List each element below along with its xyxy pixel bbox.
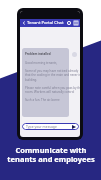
button[interactable]: Back (20, 19, 27, 27)
staticText: that the cooling in the main and never i… (25, 73, 80, 77)
other: Send (72, 125, 76, 129)
button[interactable] (22, 48, 69, 117)
staticText: Tenant Portal Chat (27, 20, 64, 26)
button[interactable]: Type your message (22, 123, 79, 130)
staticText: Please note careful when you pass by thi… (25, 86, 80, 90)
button[interactable]: Menu (72, 19, 80, 27)
staticText: Communicate with tenants and employees (7, 145, 95, 164)
staticText: building. (25, 78, 38, 82)
button[interactable]: Notifications (65, 19, 72, 27)
staticText: Good morning tenants, (25, 61, 58, 65)
staticText: Such a fun. The air-borne (25, 98, 60, 102)
staticText: Problem installed (25, 52, 51, 56)
staticText: Type your message (26, 124, 57, 129)
staticText: room. Workers will naturally control (25, 90, 75, 94)
staticText: Some of you may have noticed already (25, 69, 79, 73)
